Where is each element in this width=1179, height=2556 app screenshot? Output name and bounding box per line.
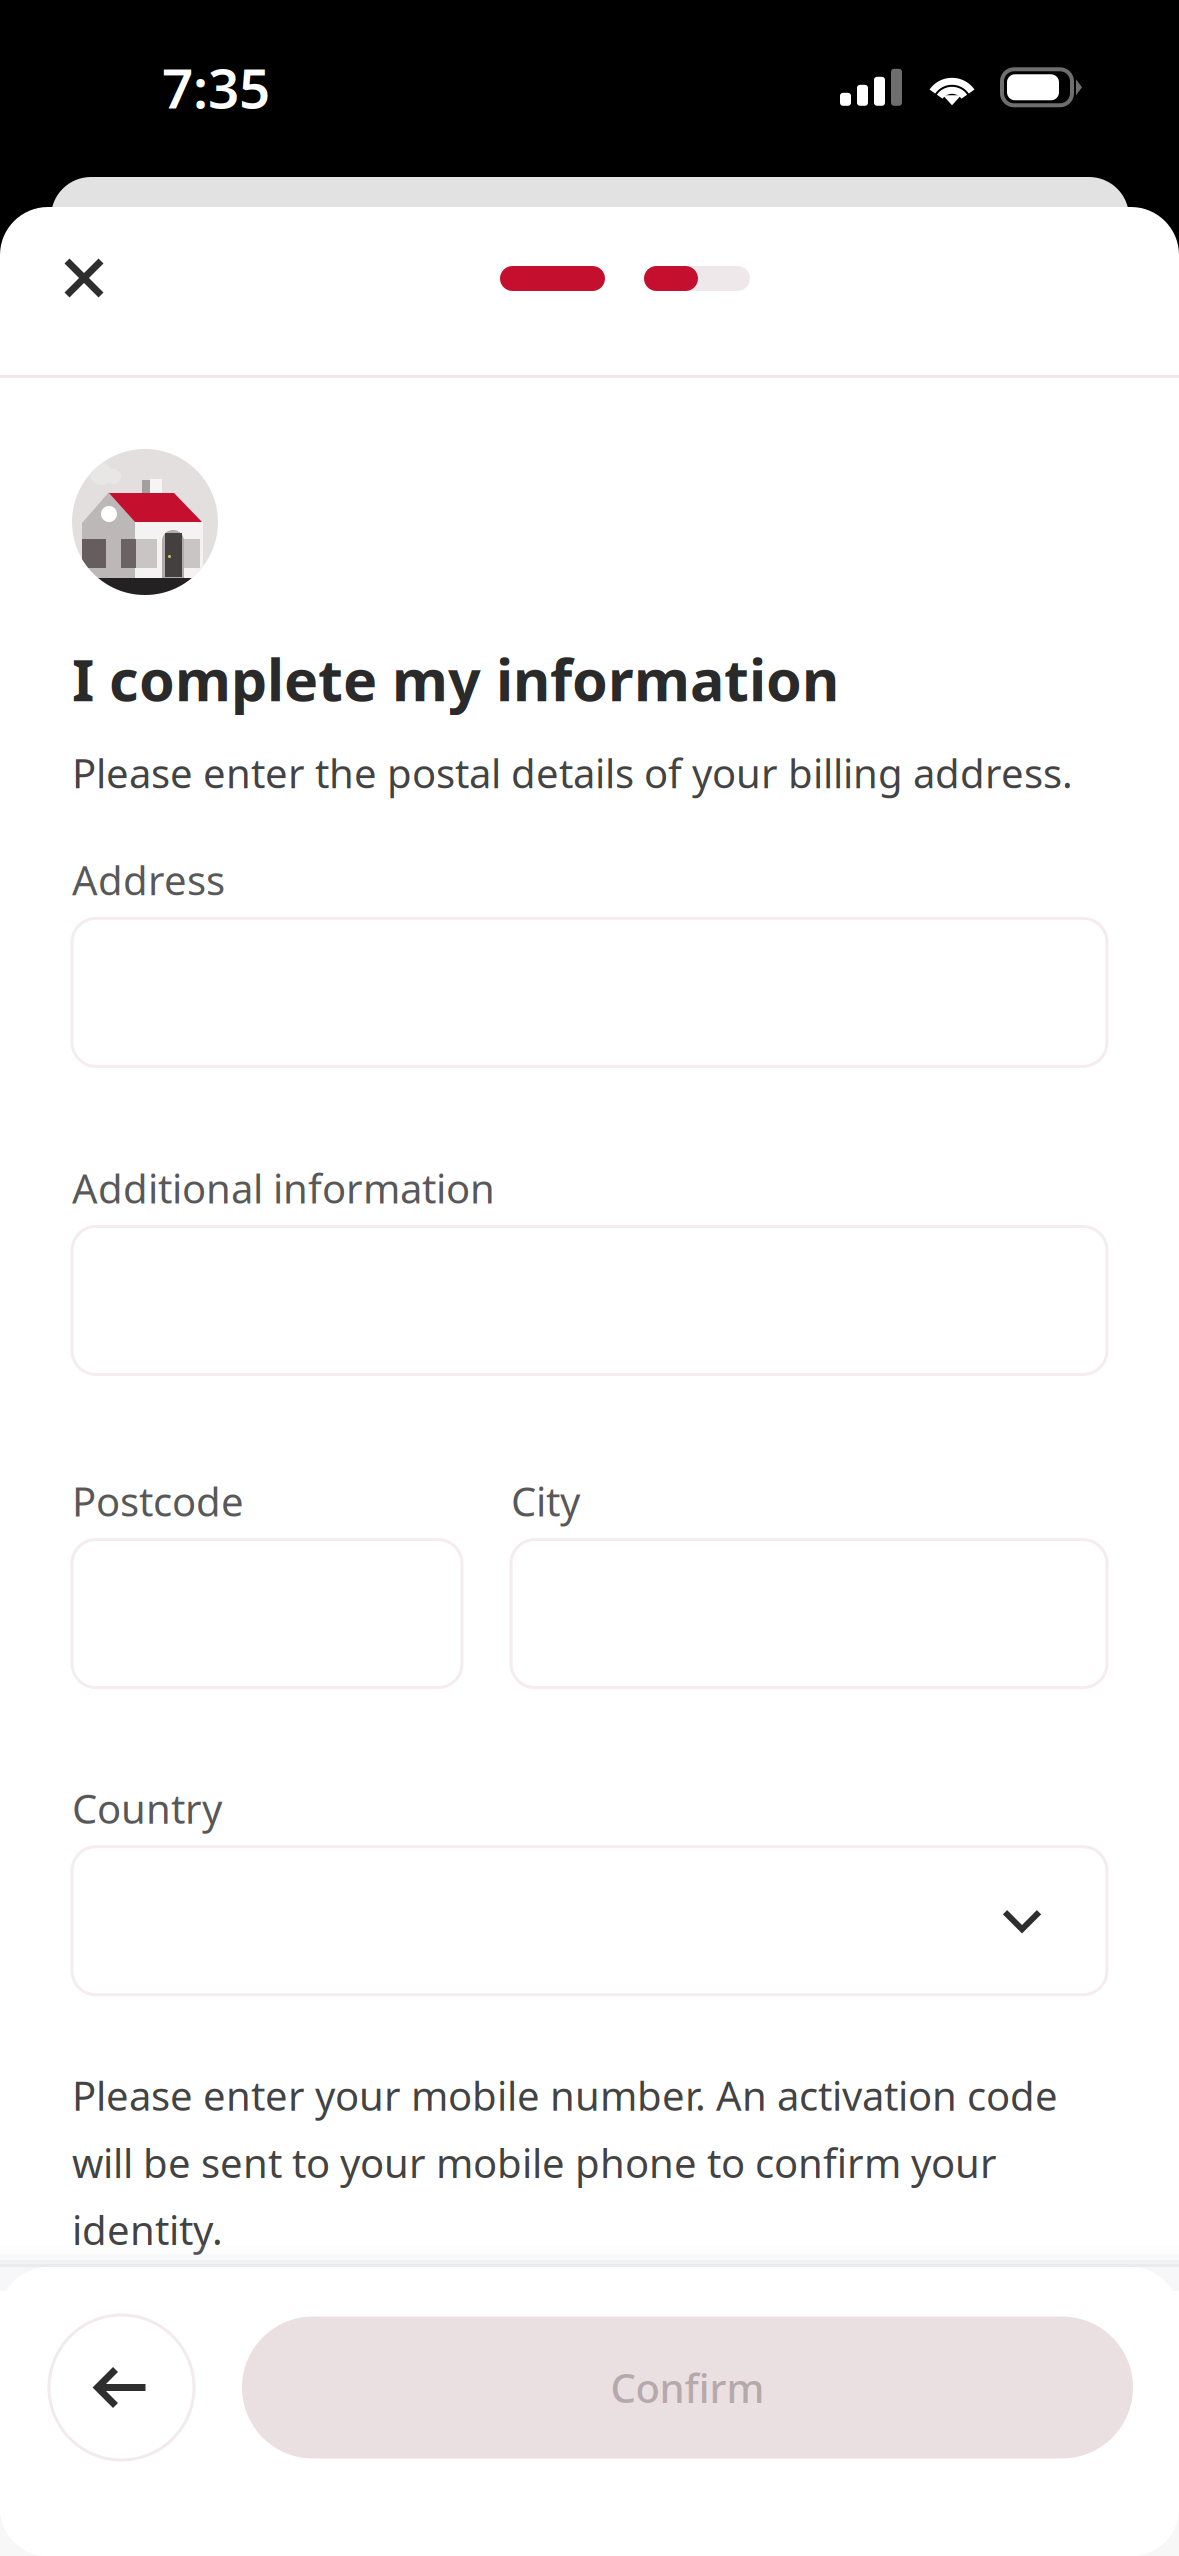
button[interactable]: Country: [72, 1847, 1107, 1995]
button[interactable]: Back: [49, 2315, 194, 2460]
staticText: Please enter the postal details of your …: [72, 746, 1073, 799]
button[interactable]: Postcode: [72, 1540, 462, 1688]
button[interactable]: Confirm: [242, 2316, 1133, 2458]
staticText: Additional information: [72, 1161, 495, 1214]
staticText: Address: [72, 853, 225, 906]
staticText: Country: [72, 1782, 222, 1835]
staticText: I complete my information: [72, 641, 839, 717]
staticText: Postcode: [72, 1474, 244, 1528]
staticText: Confirm: [610, 2361, 764, 2414]
staticText: City: [511, 1474, 580, 1528]
staticText: Please enter your mobile number. An acti…: [72, 2069, 1058, 2256]
button[interactable]: Close: [41, 235, 127, 321]
staticText: 7:35: [162, 51, 270, 124]
